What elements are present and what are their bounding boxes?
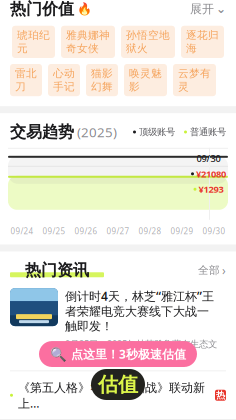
staticText: 逐花归海 bbox=[186, 29, 219, 55]
button[interactable]: 展开 bbox=[190, 2, 226, 16]
button[interactable]: 《第五人格》×《咒术回战》联动新上… bbox=[0, 371, 236, 419]
button[interactable]: 猫影幻舞 bbox=[86, 64, 118, 96]
button[interactable]: 全部 bbox=[198, 262, 226, 278]
staticText: 热 bbox=[216, 389, 225, 401]
button[interactable]: 心动手记 bbox=[48, 64, 80, 96]
staticText: 全部 bbox=[198, 264, 220, 277]
button[interactable]: 琥珀纪元 bbox=[12, 26, 55, 58]
staticText: 09/29 bbox=[170, 226, 193, 236]
staticText: ¥1293 bbox=[198, 183, 223, 195]
staticText: 顶级账号 bbox=[139, 126, 175, 138]
button[interactable]: 估值 bbox=[91, 369, 145, 400]
staticText: 孙悟空地狱火 bbox=[126, 29, 170, 55]
staticText: 《第五人格》×《咒术回战》联动新上… bbox=[18, 379, 205, 411]
button[interactable]: 🔍 bbox=[39, 341, 197, 367]
staticText: 云梦有灵 bbox=[178, 67, 211, 93]
staticText: 09/28 bbox=[138, 226, 161, 236]
staticText: 猫影幻舞 bbox=[91, 67, 113, 93]
button[interactable]: 倒计时4天，林芝“雅江杯”王者荣耀电竞大赛线下大战一触即发！ bbox=[0, 288, 236, 362]
staticText: ¥21080 bbox=[196, 168, 226, 180]
staticText: 点这里！3秒极速估值 bbox=[71, 346, 186, 362]
staticText: 雷北刀 bbox=[15, 67, 37, 93]
staticText: 09/30 bbox=[202, 226, 225, 236]
button[interactable]: 孙悟空地狱火 bbox=[121, 26, 175, 58]
button[interactable]: 雷北刀 bbox=[10, 64, 42, 96]
staticText: 09/25 bbox=[42, 226, 65, 236]
staticText: 普通账号 bbox=[190, 126, 226, 138]
staticText: 交易趋势 bbox=[10, 122, 74, 142]
staticText: 9月25日，2025年林芝雅鲁藏布生态文化旅… bbox=[65, 337, 217, 362]
staticText: 估值 bbox=[98, 372, 138, 397]
staticText: 展开 bbox=[190, 2, 214, 16]
staticText: 倒计时4天，林芝“雅江杯”王者荣耀电竞大赛线下大战一触即发！ bbox=[65, 288, 214, 333]
staticText: › bbox=[222, 262, 226, 278]
staticText: 🔥 bbox=[77, 2, 92, 16]
staticText: ⌄ bbox=[216, 2, 226, 16]
staticText: 🔍 bbox=[50, 346, 67, 362]
button[interactable]: 唤灵魅影 bbox=[124, 64, 167, 96]
button[interactable]: 逐花归海 bbox=[181, 26, 224, 58]
staticText: 09/24 bbox=[10, 226, 33, 236]
staticText: (2025) bbox=[77, 123, 117, 141]
staticText: 心动手记 bbox=[53, 67, 75, 93]
staticText: 热门资讯 bbox=[25, 260, 89, 280]
staticText: 唤灵魅影 bbox=[129, 67, 162, 93]
button[interactable]: 云梦有灵 bbox=[173, 64, 216, 96]
staticText: 09/30 bbox=[196, 152, 220, 165]
staticText: 热门价值 bbox=[10, 0, 74, 19]
staticText: 09/27 bbox=[106, 226, 129, 236]
button[interactable]: 雅典娜神奇女侠 bbox=[61, 26, 115, 58]
staticText: 09/26 bbox=[74, 226, 97, 236]
staticText: 琥珀纪元 bbox=[17, 29, 50, 55]
staticText: 雅典娜神奇女侠 bbox=[66, 29, 110, 55]
